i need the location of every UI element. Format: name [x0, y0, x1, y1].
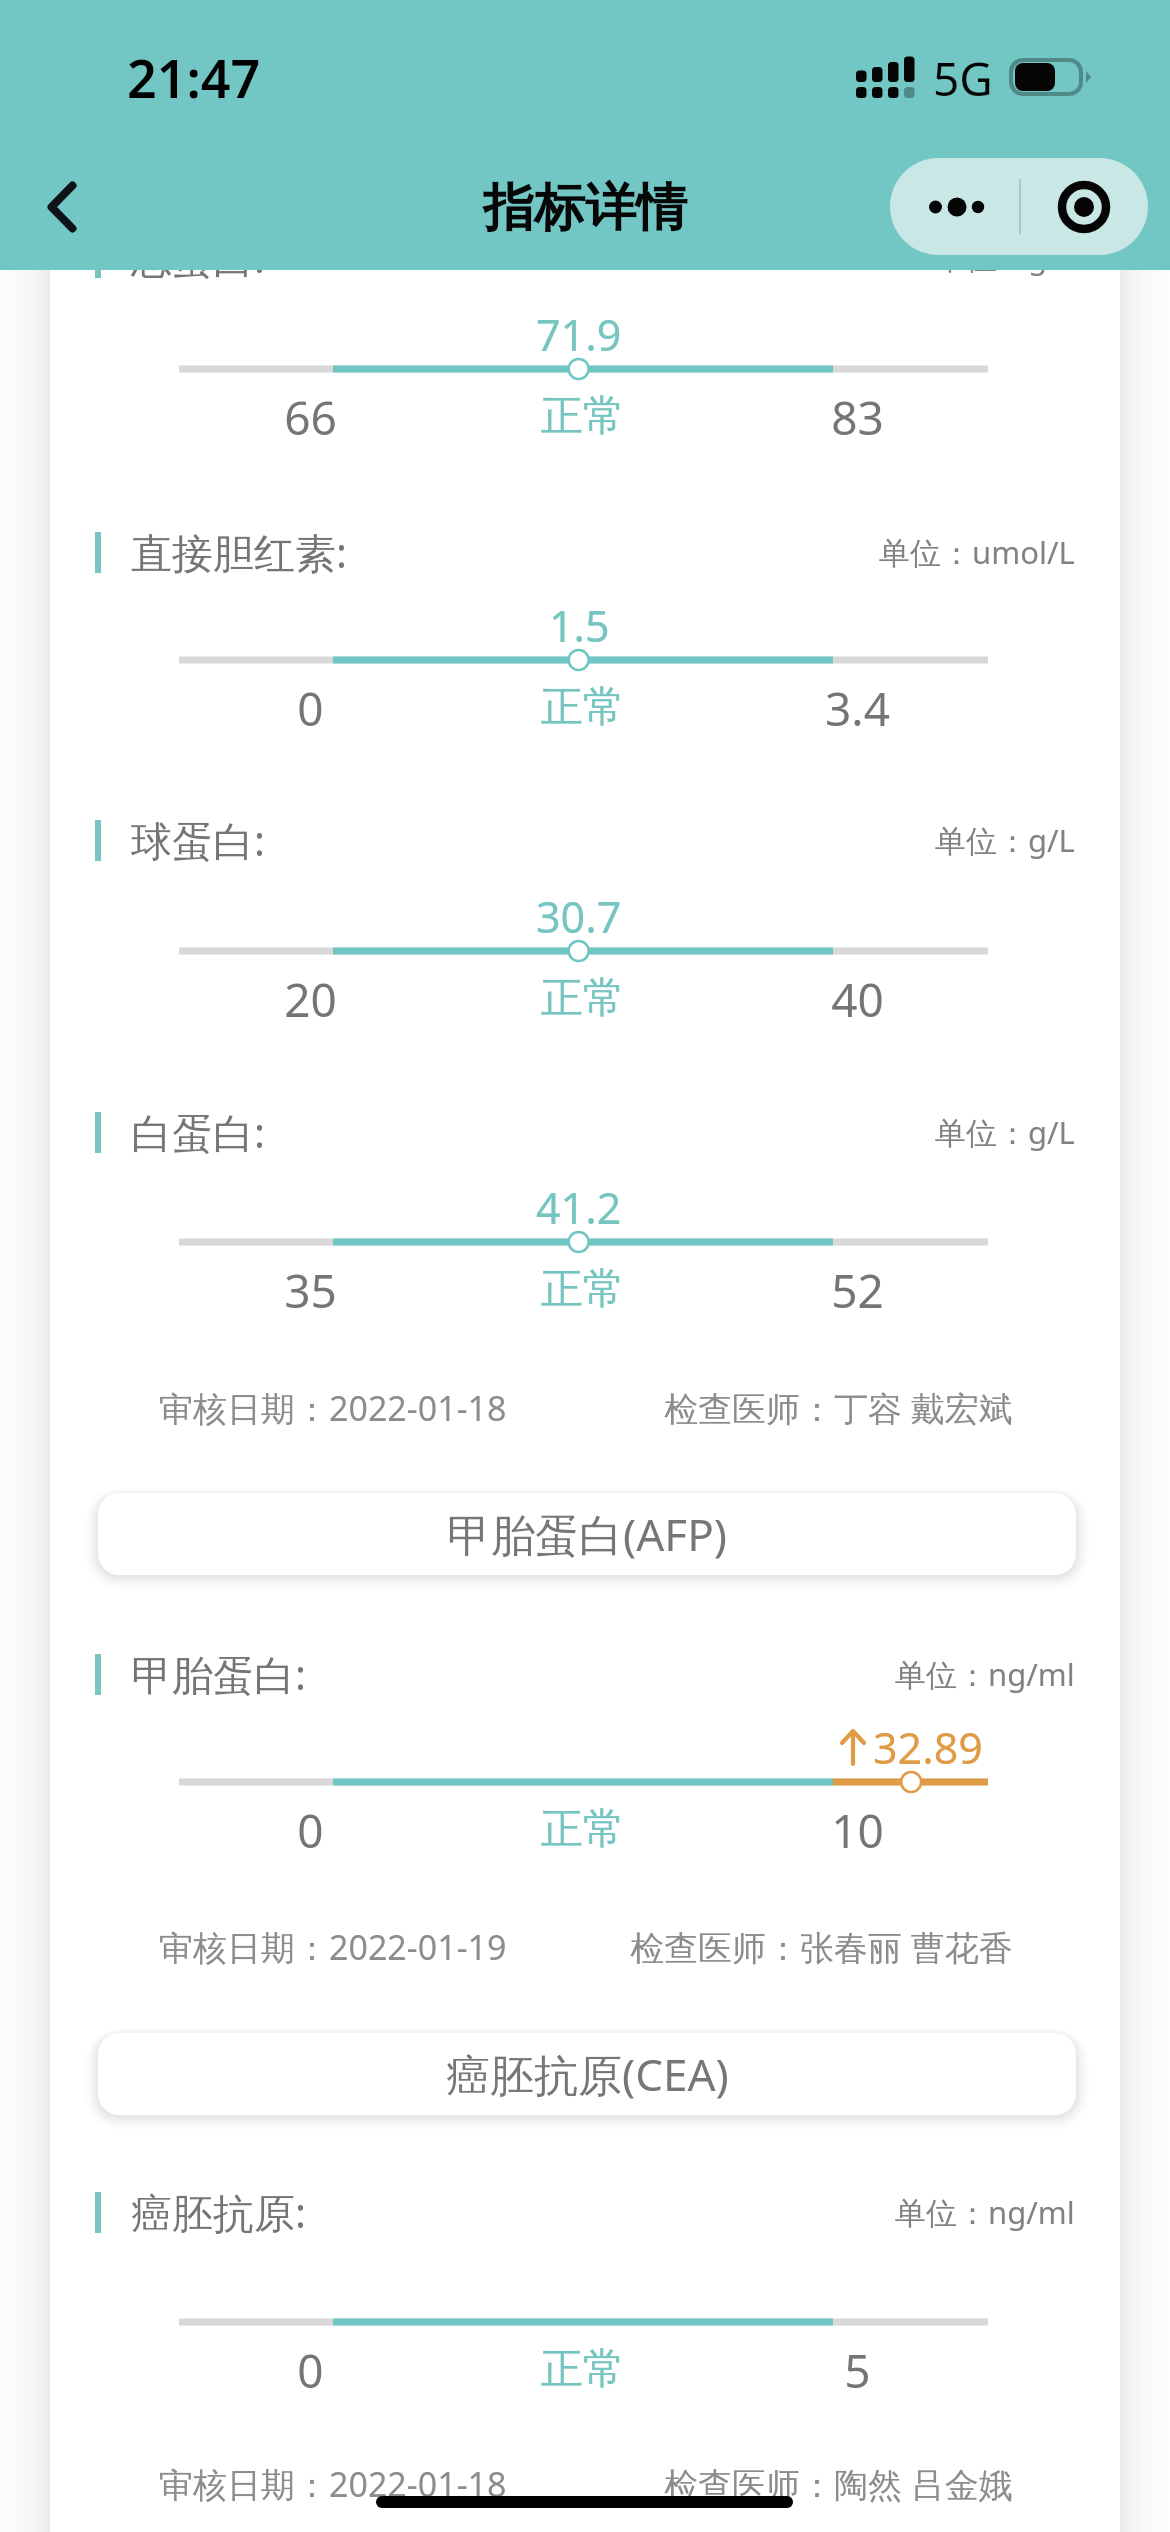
staticText: 正常: [541, 390, 625, 443]
staticText: 检查医师：张春丽 曹花香: [630, 1924, 1013, 1970]
staticText: 41.2: [536, 1178, 622, 1237]
staticText: 指标详情: [483, 176, 687, 240]
staticText: 球蛋白:: [131, 812, 265, 868]
staticText: 52: [831, 1259, 884, 1322]
staticText: 甲胎蛋白:: [131, 1646, 306, 1702]
button[interactable]: 甲胎蛋白(AFP): [98, 1493, 1076, 1575]
staticText: 83: [831, 386, 884, 449]
staticText: 白蛋白:: [131, 1104, 265, 1160]
staticText: 正常: [541, 1263, 625, 1316]
staticText: 35: [284, 1259, 337, 1322]
staticText: 71.9: [536, 305, 622, 364]
button[interactable]: Back: [10, 155, 114, 259]
staticText: 直接胆红素:: [131, 524, 347, 580]
staticText: 0: [297, 2339, 324, 2402]
staticText: 检查医师：陶然 吕金娥: [664, 2461, 1013, 2507]
staticText: 正常: [541, 972, 625, 1025]
staticText: 正常: [541, 2343, 625, 2396]
staticText: 单位：ng/ml: [895, 1653, 1075, 1695]
staticText: 20: [284, 968, 337, 1031]
staticText: 单位：g/L: [935, 1111, 1075, 1153]
staticText: 正常: [541, 681, 625, 734]
staticText: 40: [831, 968, 884, 1031]
button[interactable]: 癌胚抗原(CEA): [98, 2033, 1076, 2115]
staticText: 0: [297, 677, 324, 740]
staticText: 3.4: [825, 677, 890, 740]
staticText: 单位：g/L: [935, 236, 1075, 278]
staticText: 5G: [933, 47, 993, 110]
staticText: 检查医师：丁容 戴宏斌: [664, 1385, 1013, 1431]
staticText: 审核日期：2022-01-18: [159, 2461, 507, 2507]
staticText: 癌胚抗原:: [131, 2184, 306, 2240]
staticText: 审核日期：2022-01-19: [159, 1924, 507, 1970]
staticText: 审核日期：2022-01-18: [159, 1385, 507, 1431]
staticText: 单位：umol/L: [879, 531, 1075, 573]
button[interactable]: More options: [890, 158, 1018, 255]
staticText: 总蛋白:: [131, 229, 265, 285]
staticText: 1.5: [549, 596, 610, 655]
staticText: 30.7: [536, 887, 622, 946]
staticText: 10: [831, 1799, 884, 1862]
staticText: 癌胚抗原(CEA): [446, 2044, 729, 2104]
staticText: 66: [284, 386, 337, 449]
staticText: 5: [844, 2339, 871, 2402]
staticText: 正常: [541, 1803, 625, 1856]
staticText: 21:47: [127, 42, 261, 113]
staticText: 甲胎蛋白(AFP): [447, 1504, 727, 1564]
staticText: 0: [297, 1799, 324, 1862]
staticText: 32.89: [873, 1718, 983, 1777]
button[interactable]: Close mini program: [1020, 158, 1148, 255]
staticText: 单位：g/L: [935, 819, 1075, 861]
staticText: 单位：ng/ml: [895, 2191, 1075, 2233]
